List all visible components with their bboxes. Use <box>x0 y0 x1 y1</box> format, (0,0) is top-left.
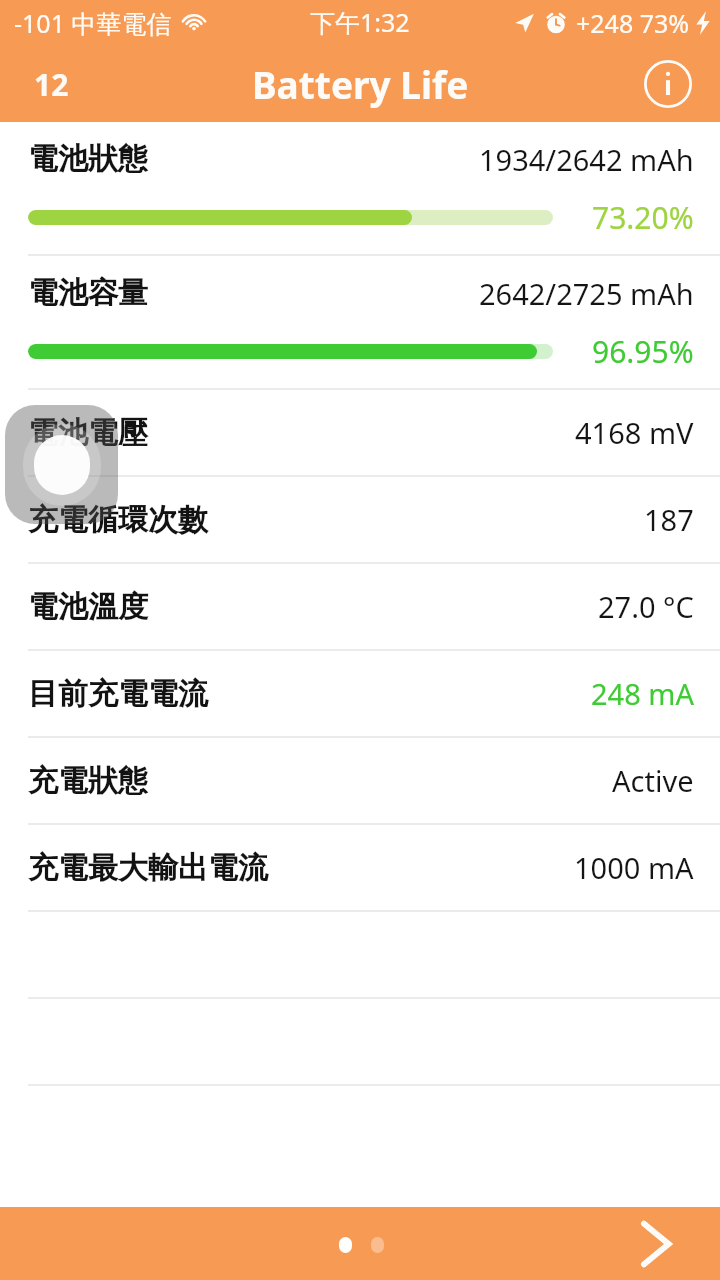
staticText: 電池狀態 <box>28 140 148 178</box>
button[interactable]: 電池狀態 <box>0 122 720 254</box>
staticText: 下午1:32 <box>310 5 410 39</box>
button[interactable]: 電池溫度 <box>0 564 720 649</box>
staticText: 充電循環次數 <box>28 501 208 539</box>
staticText: 248 mA <box>591 674 694 713</box>
staticText: Battery Life <box>252 59 469 109</box>
staticText: Active <box>612 761 694 800</box>
staticText: 電池容量 <box>28 274 148 312</box>
staticText: 充電狀態 <box>28 762 148 800</box>
staticText: 目前充電電流 <box>28 675 208 713</box>
staticText: 187 <box>644 500 694 539</box>
staticText: 96.95% <box>592 331 694 372</box>
staticText: -101 中華電信 <box>14 6 172 40</box>
button[interactable]: 目前充電電流 <box>0 651 720 736</box>
button[interactable]: Info <box>644 60 692 108</box>
button[interactable]: AssistiveTouch <box>5 405 118 524</box>
staticText: 73.20% <box>592 197 694 238</box>
staticText: 充電最大輸出電流 <box>28 849 268 887</box>
button[interactable]: 充電最大輸出電流 <box>0 825 720 910</box>
button[interactable]: Page 1 <box>339 1237 352 1253</box>
staticText: 12 <box>34 64 69 105</box>
button[interactable]: 12 <box>26 58 77 111</box>
button[interactable]: Page 2 <box>371 1237 384 1253</box>
button[interactable]: Next <box>628 1216 684 1272</box>
staticText: 2642/2725 mAh <box>479 274 694 313</box>
staticText: 1000 mA <box>574 848 694 887</box>
staticText: 27.0 °C <box>598 587 694 626</box>
staticText: +248 73% <box>576 6 690 40</box>
button[interactable]: 電池電壓 <box>0 390 720 475</box>
staticText: 電池電壓 <box>28 414 148 452</box>
staticText: 電池溫度 <box>28 588 148 626</box>
button[interactable]: 充電循環次數 <box>0 477 720 562</box>
staticText: 4168 mV <box>575 413 694 452</box>
button[interactable]: 充電狀態 <box>0 738 720 823</box>
button[interactable]: 電池容量 <box>0 256 720 388</box>
staticText: 1934/2642 mAh <box>479 140 694 179</box>
